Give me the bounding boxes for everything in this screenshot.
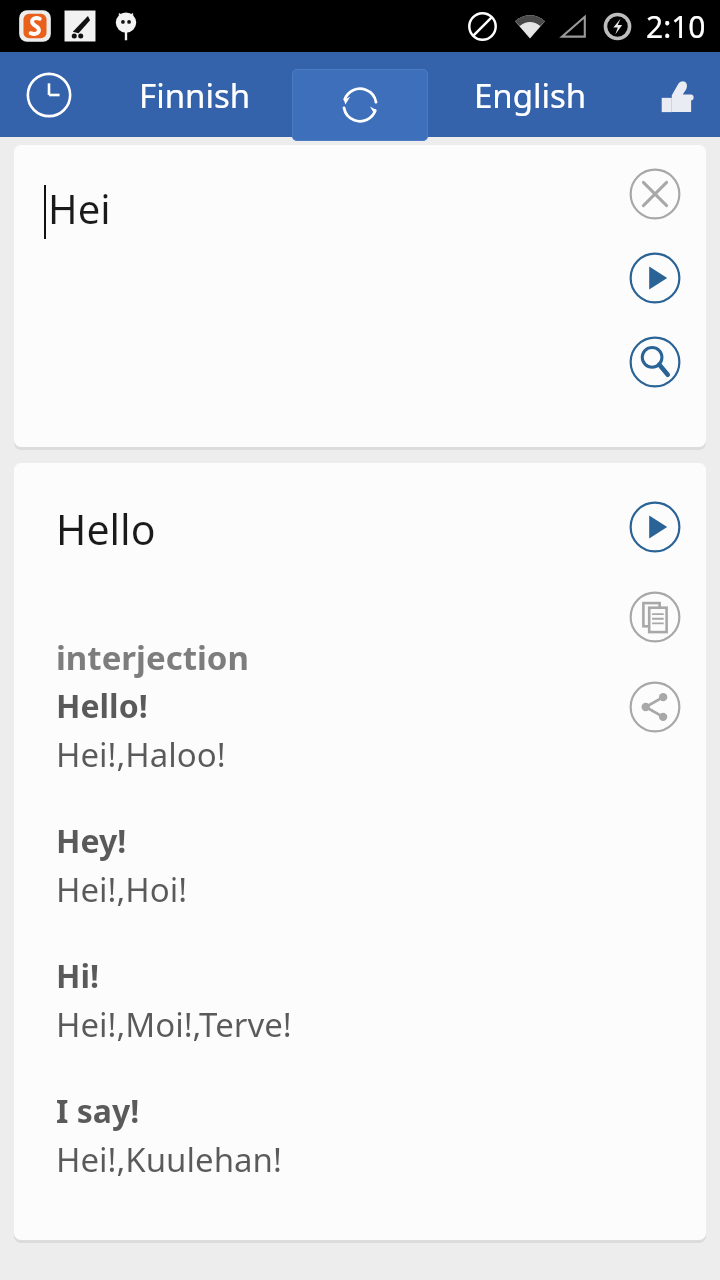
staticText: Hei!,Hoi! xyxy=(56,867,188,912)
button[interactable]: English xyxy=(435,60,625,130)
staticText: Hei!,Kuulehan! xyxy=(56,1137,282,1182)
button[interactable]: Clear xyxy=(626,165,684,223)
staticText: Hey! xyxy=(56,819,127,863)
button[interactable]: Hello! xyxy=(56,684,226,777)
button[interactable]: Rate xyxy=(645,66,707,128)
button[interactable]: Swap languages xyxy=(292,69,428,141)
staticText: Hei xyxy=(48,181,111,235)
button[interactable]: I say! xyxy=(56,1089,282,1182)
staticText: English xyxy=(474,73,587,118)
staticText: Finnish xyxy=(139,73,251,118)
staticText: Hei!,Moi!,Terve! xyxy=(56,1002,292,1047)
staticText: Hi! xyxy=(56,954,100,998)
button[interactable]: History xyxy=(20,66,78,124)
staticText: Hei!,Haloo! xyxy=(56,732,226,777)
button[interactable]: Share xyxy=(626,678,684,736)
button[interactable]: Copy xyxy=(626,588,684,646)
button[interactable]: Finnish xyxy=(100,60,290,130)
staticText: 2:10 xyxy=(646,6,706,47)
button[interactable]: Speak xyxy=(626,249,684,307)
staticText: I say! xyxy=(56,1089,140,1133)
button[interactable]: Hey! xyxy=(56,819,188,912)
staticText: interjection xyxy=(56,635,249,680)
staticText: Hello xyxy=(56,501,156,557)
button[interactable]: Hi! xyxy=(56,954,292,1047)
button[interactable]: Speak translation xyxy=(626,498,684,556)
staticText: Hello! xyxy=(56,684,148,728)
button[interactable]: Search xyxy=(626,333,684,391)
